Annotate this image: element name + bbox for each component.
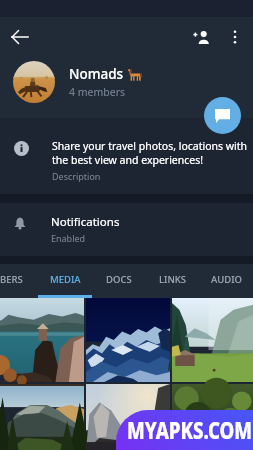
- staticText: MEDIA: [50, 273, 81, 286]
- staticText: MYAPKS.COM: [127, 414, 253, 445]
- button[interactable]: More options: [221, 23, 249, 51]
- button[interactable]: [172, 298, 253, 382]
- staticText: BERS: [0, 273, 23, 286]
- staticText: Description: [52, 170, 101, 182]
- button[interactable]: Back: [6, 23, 34, 51]
- staticText: Enabled: [51, 232, 86, 244]
- button[interactable]: Add member: [187, 23, 215, 51]
- staticText: Nomads: [69, 65, 124, 83]
- button[interactable]: [86, 384, 170, 450]
- staticText: 4 members: [69, 85, 126, 99]
- button[interactable]: BERS: [0, 264, 38, 298]
- button[interactable]: Notifications: [0, 203, 253, 256]
- button[interactable]: [13, 61, 55, 103]
- button[interactable]: [172, 384, 253, 450]
- button[interactable]: [0, 298, 84, 382]
- staticText: Share your travel photos, locations with…: [52, 139, 250, 167]
- button[interactable]: LINKS: [146, 264, 200, 298]
- button[interactable]: [86, 298, 170, 382]
- staticText: Notifications: [51, 214, 120, 230]
- button[interactable]: Message: [204, 97, 241, 134]
- button[interactable]: MEDIA: [38, 264, 92, 298]
- staticText: DOCS: [106, 273, 132, 286]
- button[interactable]: [0, 384, 84, 450]
- button[interactable]: DOCS: [92, 264, 146, 298]
- staticText: LINKS: [159, 273, 187, 286]
- staticText: AUDIO: [211, 273, 242, 286]
- button[interactable]: AUDIO: [200, 264, 252, 298]
- button[interactable]: Share your travel photos, locations with…: [0, 118, 253, 194]
